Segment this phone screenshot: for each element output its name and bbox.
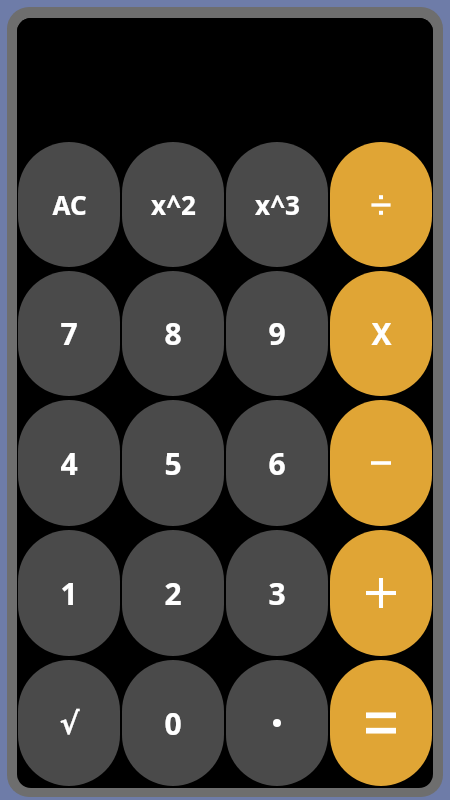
staticText: x^2 [151,187,196,222]
button[interactable]: AC [18,142,120,267]
staticText: 9 [268,313,286,354]
button[interactable]: 7 [18,271,120,396]
button[interactable]: 4 [18,400,120,526]
button[interactable]: 3 [226,530,328,656]
staticText: 3 [268,573,286,614]
staticText: 8 [164,313,182,354]
button[interactable]: Equals [330,660,432,786]
staticText: 2 [164,573,182,614]
button[interactable]: 9 [226,271,328,396]
button[interactable]: Plus [330,530,432,656]
staticText: 7 [60,313,78,354]
button[interactable]: Decimal point [226,660,328,786]
button[interactable]: 6 [226,400,328,526]
button[interactable]: 1 [18,530,120,656]
button[interactable]: X [330,271,432,396]
staticText: 0 [164,703,182,744]
button[interactable]: 0 [122,660,224,786]
button[interactable]: 2 [122,530,224,656]
staticText: √ [59,706,80,741]
button[interactable]: x^3 [226,142,328,267]
staticText: AC [52,187,87,222]
staticText: 5 [164,443,182,484]
button[interactable]: Minus [330,400,432,526]
button[interactable]: Divide [330,142,432,267]
button[interactable]: 8 [122,271,224,396]
staticText: 1 [60,573,78,614]
staticText: x^3 [255,187,300,222]
staticText: X [371,313,392,354]
staticText: 4 [60,443,78,484]
button[interactable]: √ [18,660,120,786]
button[interactable]: x^2 [122,142,224,267]
button[interactable]: 5 [122,400,224,526]
staticText: 6 [268,443,286,484]
